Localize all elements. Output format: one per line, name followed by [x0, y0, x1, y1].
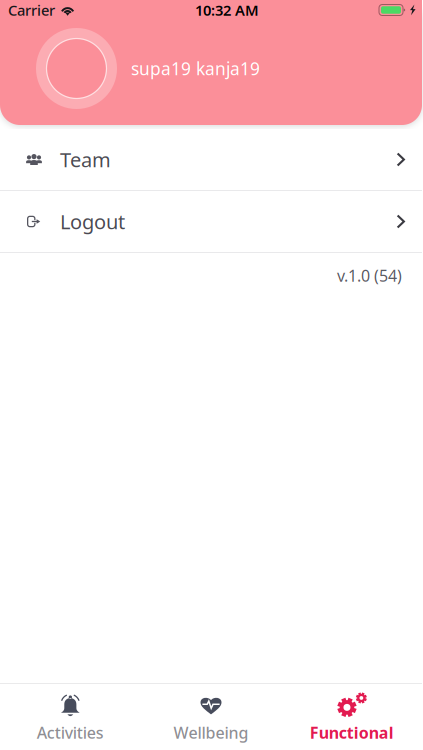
staticText: Wellbeing	[173, 722, 248, 743]
button[interactable]: Logout	[0, 191, 422, 253]
staticText: Logout	[60, 208, 125, 235]
button[interactable]: Team	[0, 129, 422, 191]
staticText: Carrier	[8, 0, 55, 20]
staticText: supa19 kanja19	[131, 57, 260, 80]
button[interactable]: Functional	[281, 684, 422, 750]
button[interactable]: Wellbeing	[141, 684, 281, 750]
staticText: v.1.0 (54)	[337, 265, 402, 286]
staticText: 10:32 AM	[195, 0, 259, 20]
staticText: Activities	[37, 722, 104, 743]
staticText: Team	[60, 146, 111, 173]
staticText: Functional	[310, 722, 394, 743]
button[interactable]: Activities	[0, 684, 141, 750]
